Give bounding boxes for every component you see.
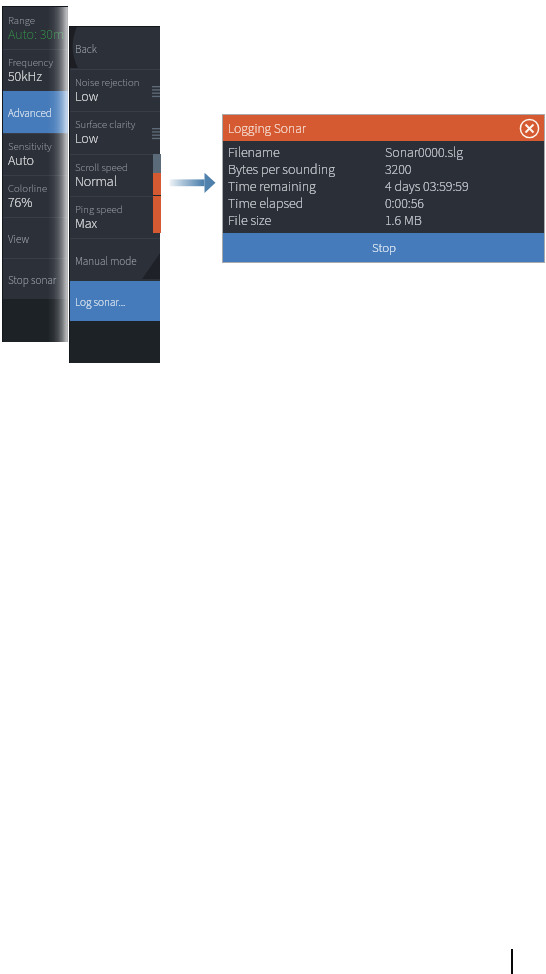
button[interactable]: View (3, 217, 68, 258)
staticText: Frequency (8, 55, 54, 70)
staticText: 0:00:56 (385, 194, 424, 211)
staticText: Stop (372, 239, 396, 257)
staticText: 1.6 MB (385, 211, 422, 228)
button[interactable]: Stop sonar (3, 258, 68, 299)
button[interactable]: Colorline (3, 175, 68, 217)
button[interactable]: Log sonar... (70, 281, 160, 321)
button[interactable]: Frequency (3, 49, 68, 91)
staticText: Advanced (8, 106, 52, 122)
staticText: Manual mode (75, 254, 137, 270)
button[interactable]: Noise rejection (70, 69, 160, 111)
button[interactable]: Sensitivity (3, 133, 68, 175)
staticText: Colorline (8, 181, 48, 196)
staticText: Auto (8, 151, 35, 171)
staticText: Log sonar... (75, 295, 126, 311)
staticText: Low (75, 129, 99, 149)
staticText: Logging Sonar (228, 119, 306, 138)
button[interactable]: Scroll speed (70, 154, 160, 196)
button[interactable]: Range (3, 7, 68, 49)
button[interactable]: Advanced (3, 91, 68, 133)
button[interactable]: Surface clarity (70, 111, 160, 154)
button[interactable]: Back (70, 27, 160, 69)
staticText: Sensitivity (8, 139, 52, 154)
staticText: Filename (228, 143, 280, 160)
staticText: File size (228, 211, 272, 228)
staticText: 50kHz (8, 67, 42, 87)
staticText: Surface clarity (75, 117, 136, 132)
button[interactable]: Ping speed (70, 196, 160, 238)
staticText: Back (75, 42, 97, 58)
staticText: View (8, 232, 29, 248)
staticText: Bytes per sounding (228, 160, 335, 177)
staticText: Auto: 30m (8, 25, 65, 45)
staticText: Stop sonar (8, 273, 57, 289)
staticText: Ping speed (75, 202, 123, 217)
staticText: Time remaining (228, 177, 316, 194)
staticText: Noise rejection (75, 75, 140, 90)
staticText: Low (75, 87, 99, 107)
button[interactable]: Stop (223, 233, 544, 262)
button[interactable]: Manual mode (70, 238, 160, 281)
staticText: 76% (8, 193, 33, 213)
staticText: Normal (75, 172, 117, 192)
staticText: Scroll speed (75, 160, 128, 175)
staticText: 3200 (385, 160, 412, 177)
staticText: 4 days 03:59:59 (385, 177, 469, 194)
staticText: Time elapsed (228, 194, 304, 211)
staticText: Range (8, 13, 35, 28)
staticText: Max (75, 214, 98, 234)
staticText: Sonar0000.slg (385, 143, 464, 160)
button[interactable]: Close dialog (519, 118, 540, 139)
